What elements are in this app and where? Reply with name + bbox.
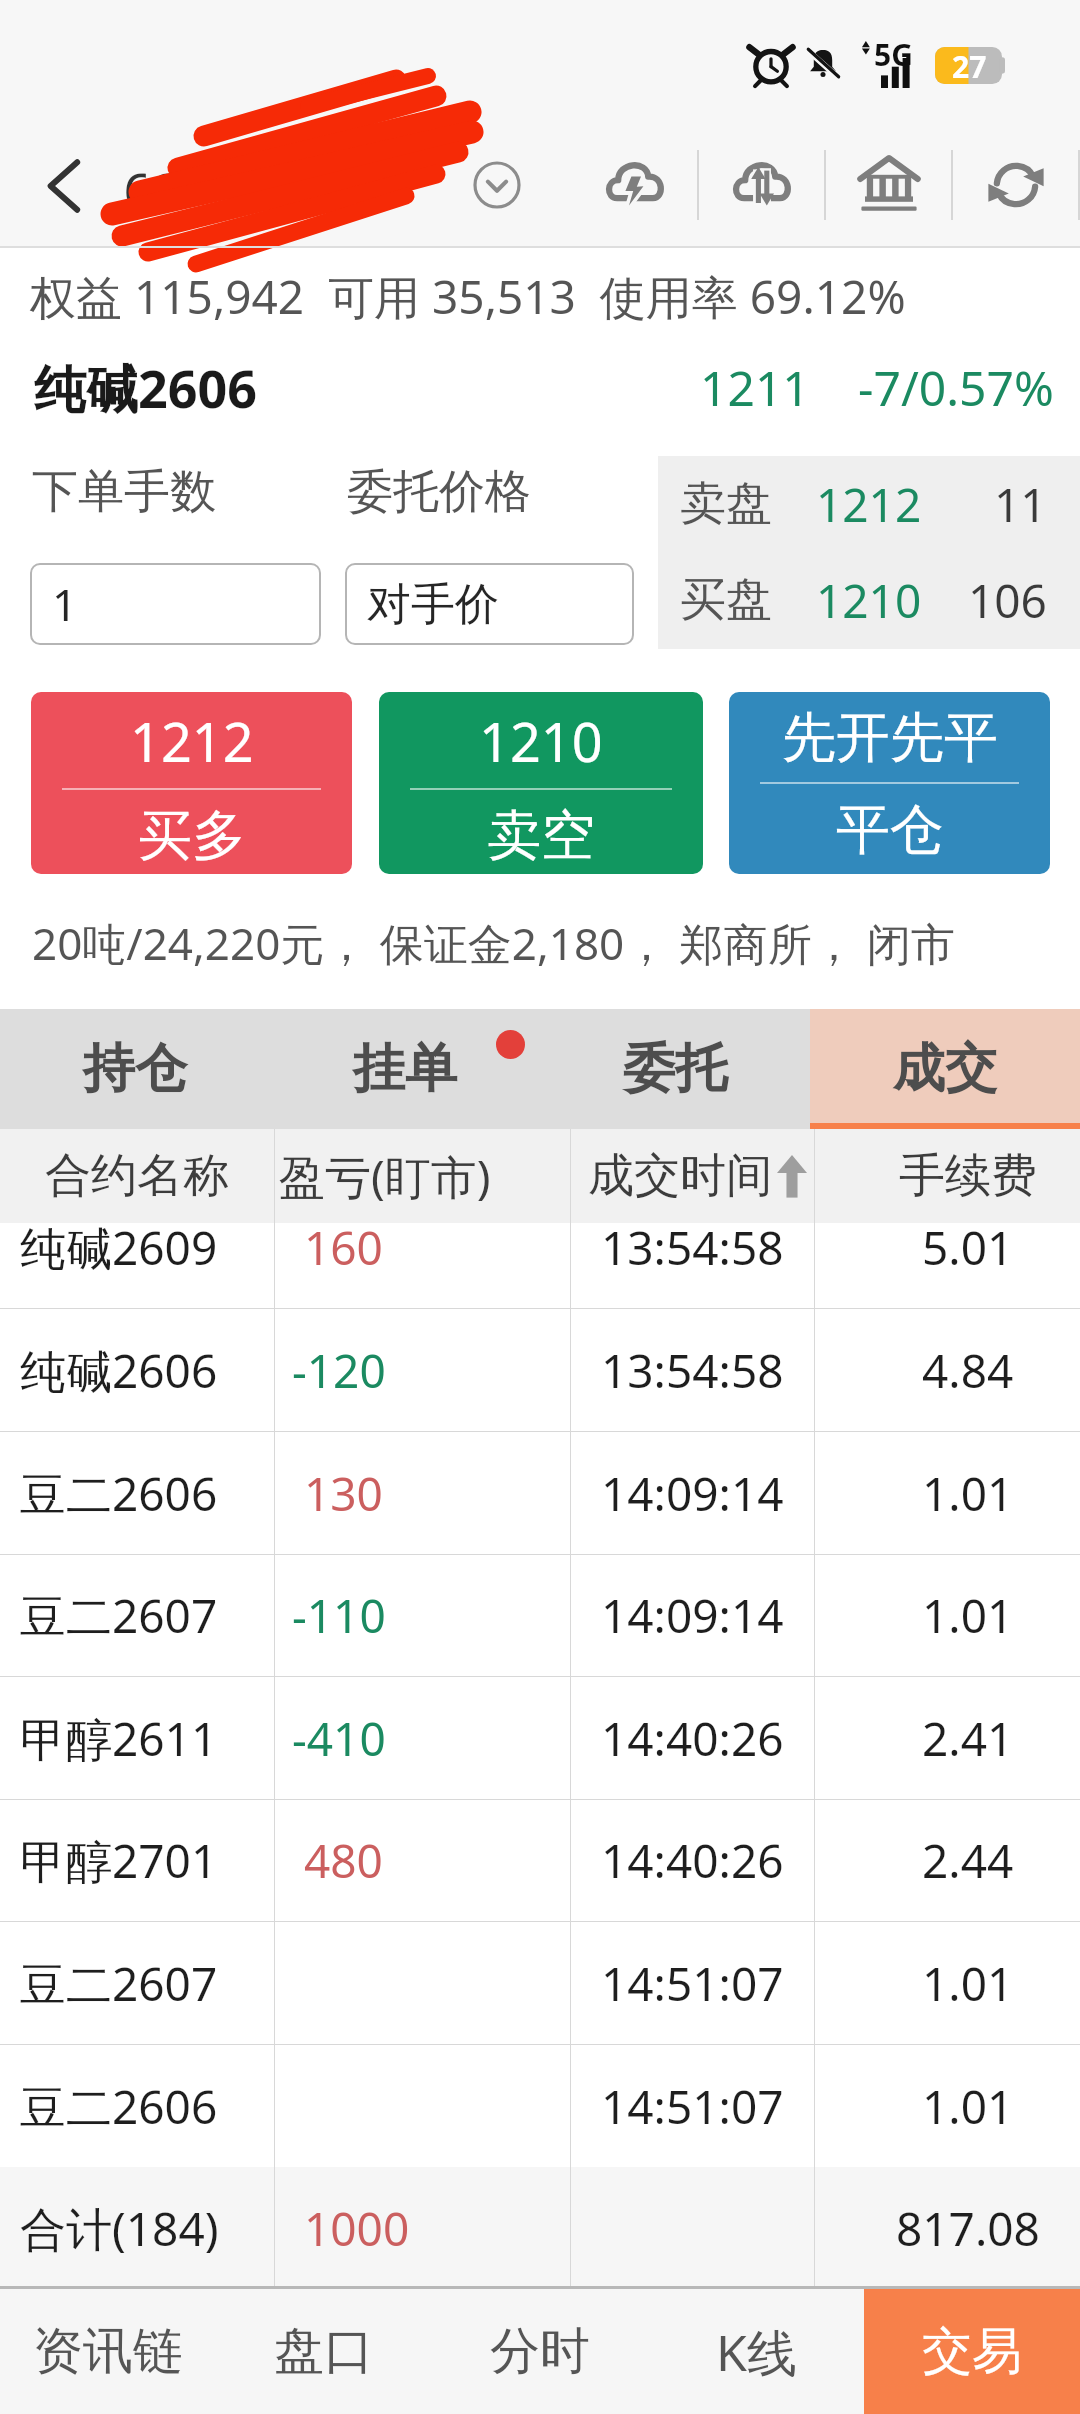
button[interactable]: 1: [30, 563, 321, 645]
staticText: -120: [292, 1339, 386, 1402]
staticText: 1211: [700, 355, 810, 420]
staticText: 合约名称: [45, 1147, 229, 1205]
button[interactable]: 1212: [31, 692, 352, 874]
staticText: 1000: [304, 2197, 410, 2260]
staticText: 5G: [874, 34, 913, 75]
staticText: 卖空: [487, 802, 595, 870]
staticText: 合计(184): [20, 2197, 219, 2260]
staticText: 挂单: [353, 1036, 457, 1102]
staticText: 1.01: [922, 2075, 1014, 2138]
button[interactable]: 豆二2607: [0, 1554, 1080, 1676]
staticText: 纯碱2606: [34, 352, 257, 423]
staticText: 14:40:26: [601, 1707, 784, 1770]
button[interactable]: 持仓: [0, 1009, 270, 1129]
button[interactable]: Expand account: [473, 161, 521, 209]
staticText: 手续费: [899, 1147, 1037, 1205]
staticText: 委托: [623, 1036, 727, 1102]
button[interactable]: Cloud alerts: [603, 137, 667, 233]
staticText: 1210: [479, 704, 603, 778]
staticText: -110: [292, 1584, 386, 1647]
button[interactable]: 豆二2607: [0, 1922, 1080, 2044]
button[interactable]: 资讯链: [0, 2289, 216, 2414]
staticText: 1210: [816, 569, 922, 632]
staticText: 分时: [490, 2320, 590, 2383]
staticText: 豆二2607: [20, 1584, 218, 1647]
staticText: 106: [968, 569, 1047, 632]
staticText: 1212: [816, 473, 922, 536]
staticText: 14:51:07: [601, 2075, 784, 2138]
staticText: 先开先平: [782, 704, 998, 772]
button[interactable]: 盘口: [216, 2289, 432, 2414]
button[interactable]: 分时: [432, 2289, 648, 2414]
staticText: 甲醇2611: [20, 1707, 218, 1770]
staticText: 盈亏(盯市): [279, 1145, 491, 1208]
staticText: 对手价: [367, 577, 499, 632]
staticText: 豆二2606: [20, 1462, 218, 1525]
staticText: 豆二2607: [20, 1952, 218, 2015]
staticText: 4.84: [922, 1339, 1014, 1402]
staticText: 14:09:14: [601, 1462, 784, 1525]
staticText: 权益 115,942 可用 35,513 使用率 69.12%: [30, 265, 906, 328]
button[interactable]: 交易: [864, 2289, 1080, 2414]
staticText: K线: [716, 2318, 797, 2386]
button[interactable]: 委托: [540, 1009, 810, 1129]
staticText: 20吨/24,220元， 保证金2,180， 郑商所， 闭市: [32, 913, 956, 973]
button[interactable]: 纯碱2609: [0, 1223, 1080, 1308]
staticText: 盘口: [274, 2320, 374, 2383]
staticText: 480: [304, 1829, 383, 1892]
button[interactable]: Bank: [857, 137, 921, 233]
staticText: 27: [952, 46, 987, 83]
button[interactable]: 成交: [810, 1009, 1080, 1129]
staticText: 1.01: [922, 1462, 1014, 1525]
staticText: 11: [994, 473, 1047, 536]
button[interactable]: 纯碱2606: [0, 1309, 1080, 1431]
staticText: 买盘: [680, 571, 772, 629]
button[interactable]: Cloud transfer: [730, 137, 794, 233]
staticText: 5.01: [922, 1223, 1014, 1279]
button[interactable]: 甲醇2701: [0, 1799, 1080, 1921]
button[interactable]: 1210: [379, 692, 703, 874]
staticText: 130: [304, 1462, 383, 1525]
button[interactable]: K线: [648, 2289, 864, 2414]
staticText: 平仓: [836, 796, 944, 864]
staticText: 14:40:26: [601, 1829, 784, 1892]
staticText: 817.08: [896, 2197, 1040, 2260]
staticText: 买多: [138, 802, 246, 870]
staticText: 14:09:14: [601, 1584, 784, 1647]
staticText: 成交时间: [588, 1147, 772, 1205]
staticText: 纯碱2609: [20, 1223, 218, 1279]
staticText: 甲醇2701: [20, 1829, 218, 1892]
staticText: 资讯链: [33, 2320, 183, 2383]
staticText: -7/0.57%: [858, 355, 1054, 420]
staticText: 交易: [922, 2320, 1022, 2383]
staticText: 纯碱2606: [20, 1339, 218, 1402]
button[interactable]: Back: [18, 138, 114, 234]
staticText: 1212: [130, 704, 254, 778]
staticText: 14:51:07: [601, 1952, 784, 2015]
staticText: 持仓: [83, 1036, 187, 1102]
staticText: 2.41: [922, 1707, 1014, 1770]
staticText: 卖盘: [680, 475, 772, 533]
staticText: 1: [52, 574, 78, 634]
button[interactable]: 对手价: [345, 563, 634, 645]
staticText: 委托价格: [347, 463, 531, 521]
staticText: 160: [304, 1223, 383, 1279]
staticText: 66**账户号: [124, 158, 366, 221]
button[interactable]: 甲醇2611: [0, 1677, 1080, 1799]
button[interactable]: 豆二2606: [0, 1432, 1080, 1554]
button[interactable]: 挂单: [270, 1009, 540, 1129]
button[interactable]: 豆二2606: [0, 2045, 1080, 2167]
staticText: 成交: [893, 1036, 997, 1102]
staticText: 1.01: [922, 1952, 1014, 2015]
staticText: 2.44: [922, 1829, 1014, 1892]
button[interactable]: Refresh: [984, 137, 1048, 233]
staticText: 下单手数: [32, 463, 216, 521]
staticText: 1.01: [922, 1584, 1014, 1647]
staticText: 13:54:58: [601, 1223, 784, 1279]
button[interactable]: 先开先平: [729, 692, 1050, 874]
staticText: -410: [292, 1707, 386, 1770]
staticText: 豆二2606: [20, 2075, 218, 2138]
staticText: 13:54:58: [601, 1339, 784, 1402]
